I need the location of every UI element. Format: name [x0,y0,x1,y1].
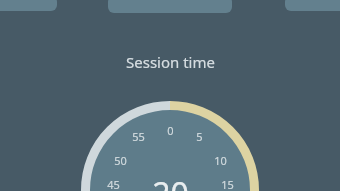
staticText: 20 [152,172,189,191]
staticText: 50 [114,153,127,168]
button[interactable]: Session time dial, 20 minutes [0,0,340,191]
button[interactable]: Current session [108,0,232,13]
staticText: Session time [126,52,215,72]
button[interactable]: Next session [285,0,340,11]
staticText: 15 [221,177,234,191]
staticText: 45 [107,177,120,191]
staticText: 5 [196,129,203,144]
button[interactable]: Previous session [0,0,57,11]
staticText: 10 [214,153,227,168]
staticText: 0 [167,123,174,138]
staticText: 55 [132,129,145,144]
